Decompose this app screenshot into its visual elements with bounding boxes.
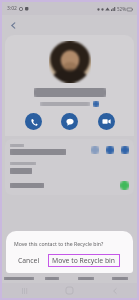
- staticText: Cancel: [18, 256, 40, 265]
- button[interactable]: [103, 273, 137, 283]
- button[interactable]: [10, 162, 129, 174]
- button[interactable]: Call number: [10, 144, 129, 155]
- button[interactable]: Call: [25, 113, 42, 130]
- staticText: 3:02: [7, 5, 17, 12]
- button[interactable]: Move to Recycle bin: [48, 254, 120, 267]
- button[interactable]: [2, 273, 35, 283]
- staticText: Move this contact to the Recycle bin?: [14, 240, 104, 247]
- button[interactable]: [69, 273, 103, 283]
- button[interactable]: Cancel: [14, 254, 44, 267]
- button[interactable]: [35, 273, 69, 283]
- button[interactable]: Message: [61, 113, 78, 130]
- button[interactable]: Video call: [98, 113, 115, 130]
- button[interactable]: Call number: [90, 145, 99, 154]
- button[interactable]: Message number: [105, 145, 114, 154]
- staticText: Move to Recycle bin: [52, 256, 116, 265]
- button[interactable]: Video call number: [120, 145, 129, 154]
- button[interactable]: Back: [6, 18, 20, 32]
- staticText: 52%: [117, 6, 126, 12]
- button[interactable]: [10, 181, 129, 190]
